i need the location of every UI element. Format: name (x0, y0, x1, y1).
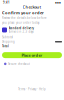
staticText: Total (2, 45, 9, 48)
staticText: 9:41 (3, 1, 10, 4)
staticText: Secure checkout (8, 62, 30, 66)
staticText: Subtotal (2, 35, 13, 39)
staticText: Place order (21, 52, 42, 58)
staticText: Terms · Privacy · Help (18, 87, 46, 91)
staticText: ▪▪▪ (55, 1, 61, 4)
staticText: Standard delivery (8, 26, 33, 30)
staticText: Arrives in 2-3 days (8, 30, 33, 33)
staticText: you place your order today. (2, 21, 40, 24)
staticText: Checkout (22, 4, 41, 10)
button[interactable]: Place order (2, 52, 62, 58)
staticText: Confirm your order (2, 10, 44, 15)
staticText: Shipping (2, 40, 15, 43)
staticText: Review the details below before (2, 16, 47, 20)
